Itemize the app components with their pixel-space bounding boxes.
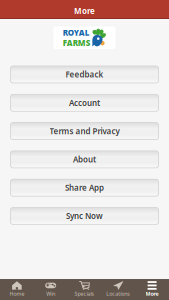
button[interactable]: More xyxy=(135,279,169,300)
button[interactable]: Locations xyxy=(101,279,135,300)
button[interactable]: Win xyxy=(34,279,68,300)
button[interactable]: Terms and Privacy xyxy=(10,123,158,140)
staticText: Terms and Privacy xyxy=(49,126,119,136)
staticText: Share App xyxy=(65,182,104,193)
staticText: Locations xyxy=(106,290,130,297)
button[interactable]: Specials xyxy=(68,279,101,300)
staticText: More xyxy=(74,6,95,16)
staticText: Account xyxy=(69,97,100,108)
button[interactable]: Home xyxy=(0,279,34,300)
button[interactable]: Feedback xyxy=(10,66,158,83)
staticText: Sync Now xyxy=(66,211,103,221)
staticText: Win xyxy=(46,290,55,297)
button[interactable]: Sync Now xyxy=(10,207,158,224)
staticText: More xyxy=(146,290,159,297)
button[interactable]: Share App xyxy=(10,179,158,196)
staticText: Home xyxy=(9,290,24,297)
staticText: Specials xyxy=(74,290,94,297)
staticText: About xyxy=(73,154,96,165)
button[interactable]: Account xyxy=(10,94,158,111)
staticText: ROYAL xyxy=(63,27,90,38)
staticText: Feedback xyxy=(65,69,103,80)
button[interactable]: About xyxy=(10,151,158,168)
staticText: FARMS xyxy=(63,38,91,48)
